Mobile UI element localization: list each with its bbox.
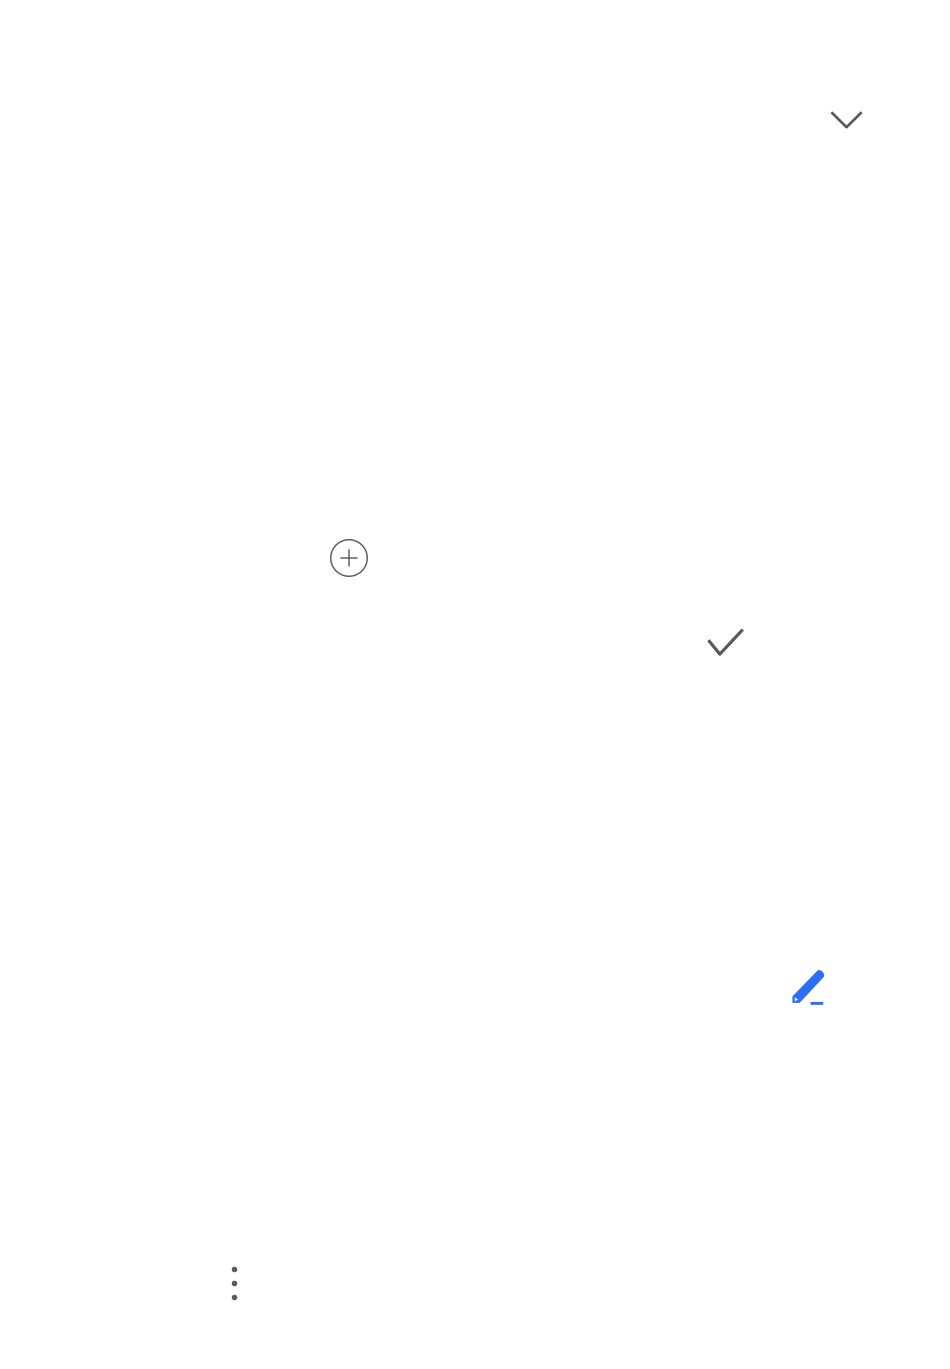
button[interactable]: Collapse header [818, 92, 874, 148]
button[interactable]: Done [697, 613, 755, 671]
button[interactable]: Compose [780, 958, 838, 1016]
button[interactable]: Add [319, 528, 379, 588]
button[interactable]: More options [208, 1255, 260, 1311]
